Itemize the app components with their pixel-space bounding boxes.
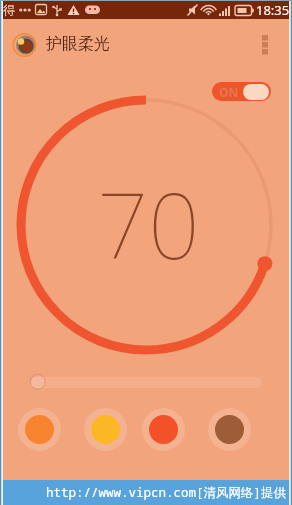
button[interactable]: Colour option [18, 408, 61, 451]
staticText: 70 [97, 163, 200, 286]
staticText: 护眼柔光 [46, 34, 110, 54]
button[interactable]: Slider handle [28, 372, 48, 392]
button[interactable]: Colour option [208, 408, 251, 451]
staticText: 得 [3, 2, 15, 17]
staticText: 18:35 [256, 1, 290, 19]
button[interactable]: Night light icon [8, 29, 40, 61]
button[interactable]: More options [250, 25, 282, 63]
button[interactable]: Colour option [84, 408, 127, 451]
button[interactable]: Brightness slider [30, 377, 262, 388]
button[interactable]: Colour option [142, 408, 185, 451]
staticText: http://www.vipcn.com[清风网络]提供 [46, 484, 287, 501]
staticText: ON [219, 84, 239, 100]
button[interactable]: ON [212, 82, 271, 101]
